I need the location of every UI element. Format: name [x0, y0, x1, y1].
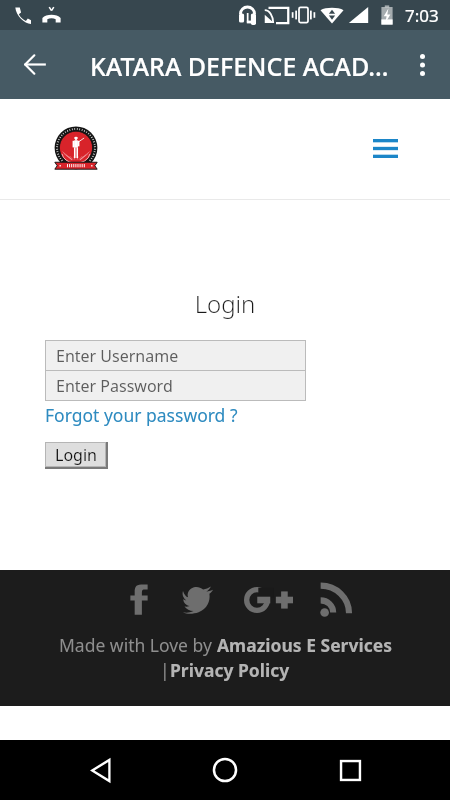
button[interactable]: RSS feed	[318, 583, 354, 618]
staticText: Enter Password	[56, 375, 173, 397]
button[interactable]: Back	[77, 746, 125, 794]
button[interactable]: Forgot your password ?	[45, 403, 238, 427]
button[interactable]: Twitter	[181, 585, 214, 613]
staticText: KATARA DEFENCE ACAD…	[90, 49, 389, 83]
staticText: 7:03	[405, 4, 439, 27]
button[interactable]: Facebook	[122, 581, 155, 617]
button[interactable]: Login	[45, 442, 108, 469]
staticText: Login	[0, 287, 450, 320]
button[interactable]: Amazious E Services	[217, 633, 392, 657]
staticText: Login	[55, 444, 97, 466]
button[interactable]: Home	[201, 746, 249, 794]
button[interactable]: Back	[12, 41, 59, 88]
button[interactable]: Enter Username	[46, 341, 305, 370]
staticText: |	[160, 658, 170, 682]
button[interactable]: More options	[399, 41, 446, 88]
button[interactable]: Privacy Policy	[170, 658, 290, 682]
button[interactable]: Recent apps	[326, 746, 374, 794]
button[interactable]: Menu	[369, 131, 401, 165]
staticText: Enter Username	[56, 345, 179, 367]
button[interactable]: Enter Password	[46, 371, 305, 400]
staticText: Made with Love by	[59, 633, 217, 657]
button[interactable]: Google Plus	[242, 585, 294, 614]
